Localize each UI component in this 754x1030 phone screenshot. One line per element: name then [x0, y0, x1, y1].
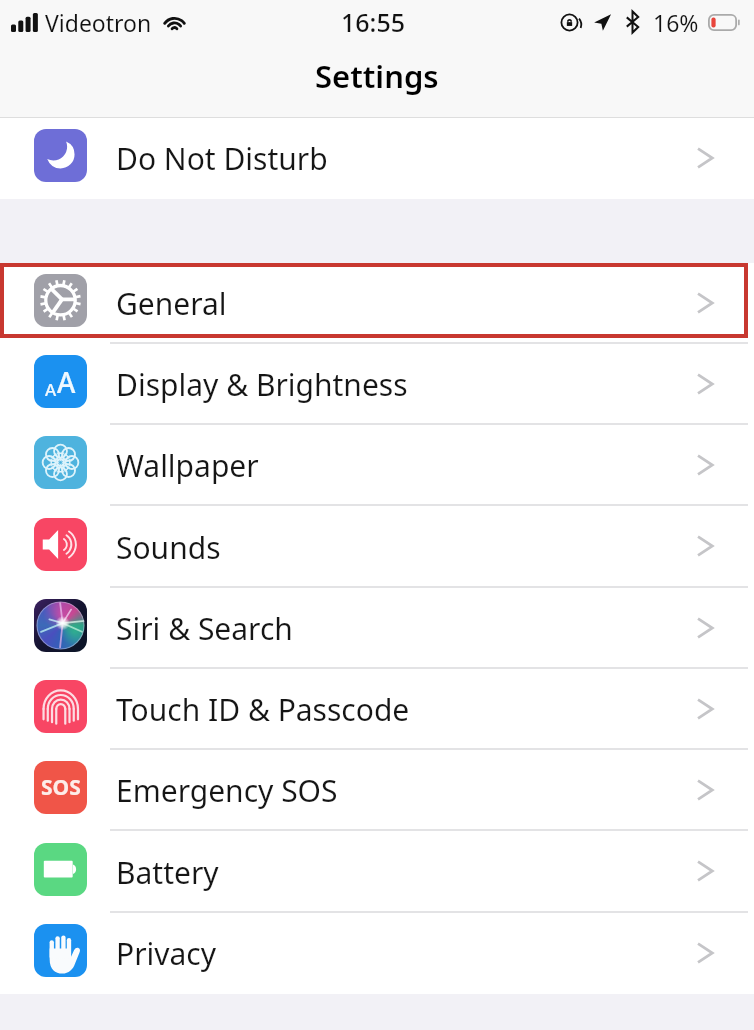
staticText: Display & Brightness	[116, 364, 408, 405]
staticText: Videotron	[45, 7, 152, 38]
button[interactable]: A	[0, 344, 754, 425]
button[interactable]: Wallpaper	[0, 425, 754, 506]
staticText: Battery	[116, 852, 219, 893]
staticText: Settings	[315, 55, 439, 97]
staticText: Touch ID & Passcode	[116, 689, 410, 730]
staticText: Emergency SOS	[116, 770, 338, 811]
staticText: SOS	[41, 773, 81, 802]
button[interactable]: Sounds	[0, 506, 754, 588]
button[interactable]: General	[0, 263, 754, 344]
staticText: Siri & Search	[116, 608, 293, 649]
button[interactable]: Siri & Search	[0, 588, 754, 669]
button[interactable]: Battery	[0, 831, 754, 913]
staticText: General	[116, 283, 227, 324]
button[interactable]: SOS	[0, 750, 754, 831]
button[interactable]: Do Not Disturb	[0, 118, 754, 199]
staticText: A	[57, 363, 76, 401]
staticText: Privacy	[116, 933, 217, 974]
button[interactable]: Touch ID & Passcode	[0, 669, 754, 750]
staticText: Wallpaper	[116, 445, 259, 486]
staticText: Sounds	[116, 527, 221, 568]
button[interactable]: Privacy	[0, 913, 754, 994]
staticText: Do Not Disturb	[116, 138, 328, 179]
staticText: 16:55	[341, 5, 406, 39]
staticText: 16%	[653, 7, 699, 38]
staticText: A	[45, 378, 57, 401]
